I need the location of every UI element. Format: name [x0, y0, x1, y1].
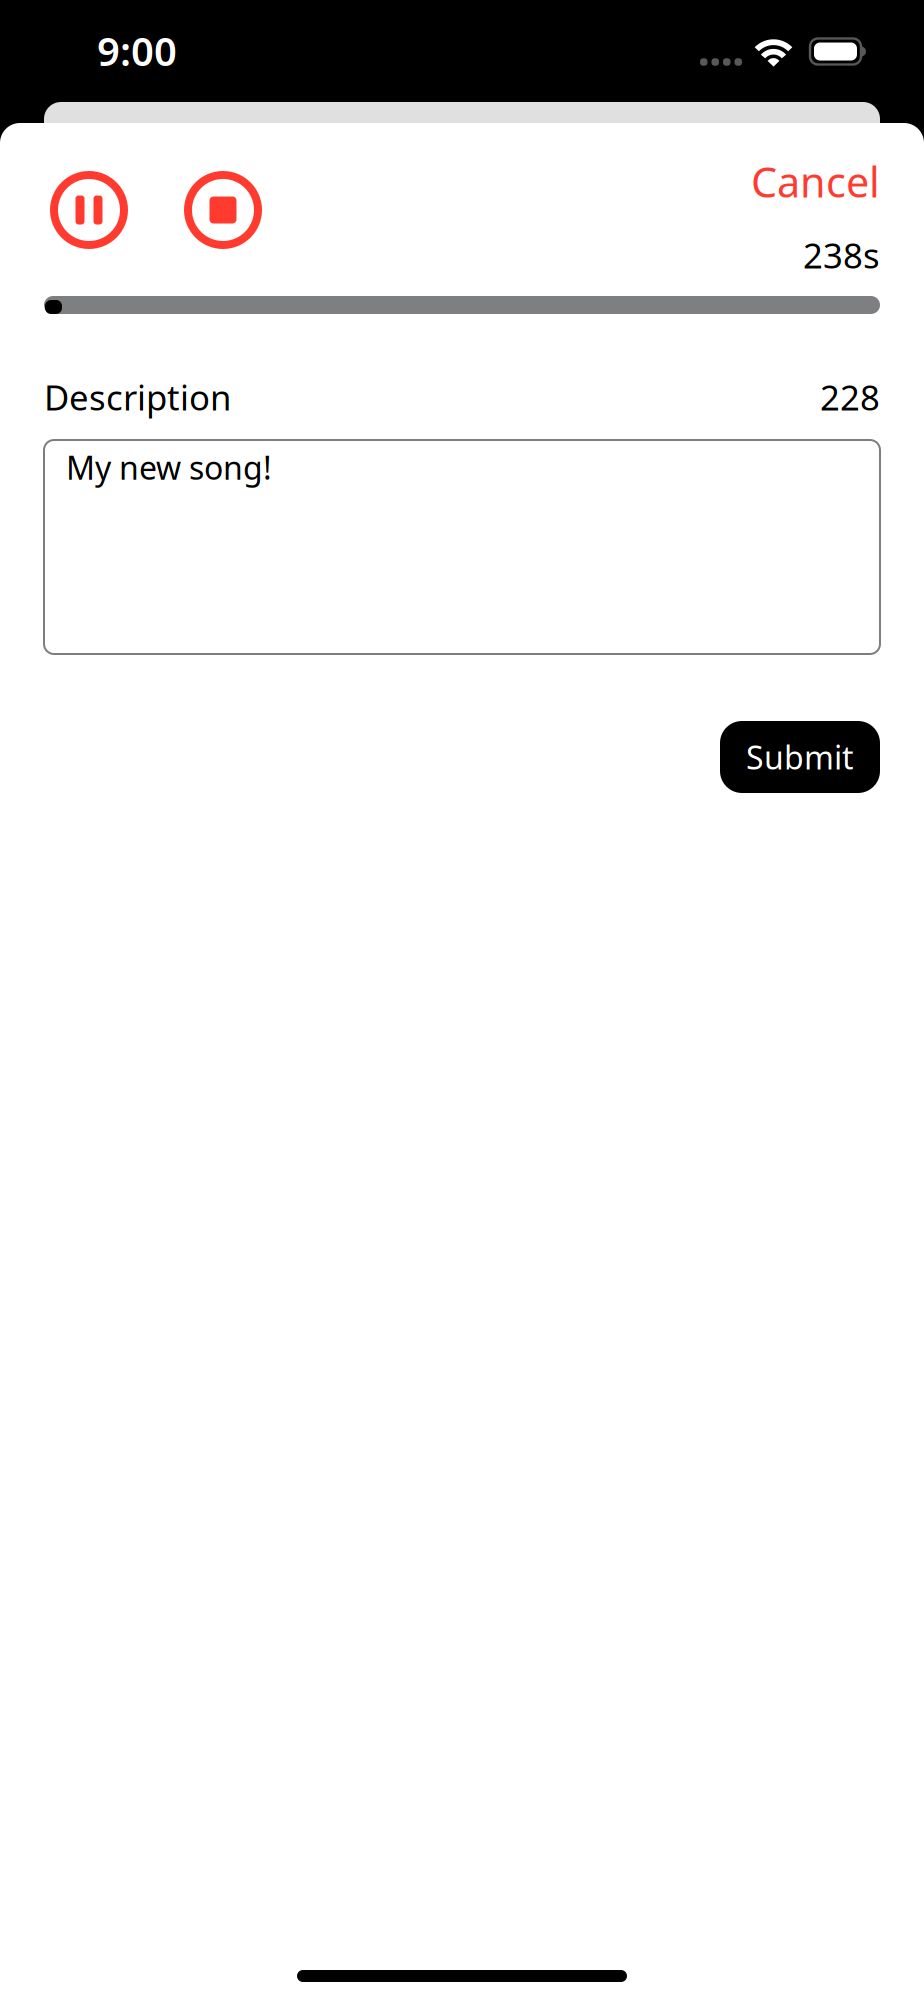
staticText: 238s [803, 232, 880, 278]
staticText: Description [44, 374, 231, 420]
staticText: My new song! [66, 446, 272, 488]
staticText: 9:00 [97, 24, 177, 77]
button[interactable]: Pause [50, 171, 128, 249]
staticText: 228 [820, 374, 880, 420]
button[interactable]: Stop [184, 171, 262, 249]
button[interactable]: Description [44, 440, 880, 654]
staticText: Cancel [751, 154, 880, 209]
button[interactable]: Submit [720, 721, 880, 793]
staticText: Submit [746, 736, 854, 778]
button[interactable]: Cancel [751, 154, 880, 209]
